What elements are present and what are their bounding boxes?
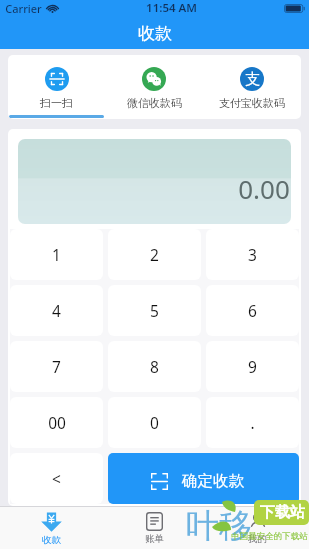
staticText: 收款 bbox=[138, 23, 172, 44]
staticText: 中国最安全的下载站 bbox=[231, 531, 308, 542]
staticText: 9 bbox=[248, 356, 257, 377]
staticText: Carrier bbox=[5, 1, 42, 16]
staticText: 我的 bbox=[248, 533, 267, 545]
button[interactable]: 7 bbox=[10, 341, 103, 392]
button[interactable]: 4 bbox=[10, 285, 103, 336]
staticText: . bbox=[250, 412, 255, 433]
button[interactable]: 1 bbox=[10, 229, 103, 280]
other: 我的 bbox=[249, 512, 267, 531]
staticText: 1 bbox=[52, 244, 61, 265]
button[interactable]: < bbox=[10, 453, 103, 504]
button[interactable]: 2 bbox=[108, 229, 201, 280]
button[interactable]: 账单 bbox=[103, 506, 206, 549]
staticText: 0 bbox=[150, 412, 159, 433]
staticText: 2 bbox=[150, 244, 159, 265]
staticText: 5 bbox=[150, 300, 159, 321]
staticText: 0.00 bbox=[238, 171, 290, 206]
staticText: 8 bbox=[150, 356, 159, 377]
staticText: < bbox=[52, 468, 61, 489]
button[interactable]: 3 bbox=[206, 229, 299, 280]
button[interactable]: 5 bbox=[108, 285, 201, 336]
button[interactable]: 9 bbox=[206, 341, 299, 392]
button[interactable]: 6 bbox=[206, 285, 299, 336]
button[interactable]: 8 bbox=[108, 341, 201, 392]
button[interactable]: 微信收款码 bbox=[105, 55, 203, 119]
staticText: 3 bbox=[248, 244, 257, 265]
staticText: 4 bbox=[52, 300, 61, 321]
staticText: 7 bbox=[52, 356, 61, 377]
button[interactable]: 00 bbox=[10, 397, 103, 448]
staticText: 确定收款 bbox=[182, 471, 244, 491]
other: 收款 bbox=[41, 512, 62, 532]
staticText: 账单 bbox=[145, 533, 164, 545]
staticText: 6 bbox=[248, 300, 257, 321]
staticText: 支 bbox=[245, 70, 260, 89]
staticText: 00 bbox=[48, 412, 66, 433]
button[interactable]: 我的 bbox=[206, 506, 309, 549]
button[interactable]: 收款 bbox=[0, 506, 103, 549]
button[interactable]: 0 bbox=[108, 397, 201, 448]
staticText: 支付宝收款码 bbox=[219, 96, 285, 110]
button[interactable]: 支 bbox=[203, 55, 301, 119]
staticText: 叶移 bbox=[186, 505, 252, 547]
staticText: 收款 bbox=[42, 534, 61, 546]
staticText: 下载站 bbox=[260, 503, 305, 522]
staticText: 扫一扫 bbox=[40, 96, 73, 110]
staticText: 微信收款码 bbox=[127, 96, 182, 110]
button[interactable]: . bbox=[206, 397, 299, 448]
staticText: 11:54 AM bbox=[146, 0, 197, 16]
button[interactable]: 确定收款 bbox=[108, 453, 299, 504]
other: 账单 bbox=[146, 512, 163, 531]
button[interactable]: 扫一扫 bbox=[8, 55, 105, 119]
